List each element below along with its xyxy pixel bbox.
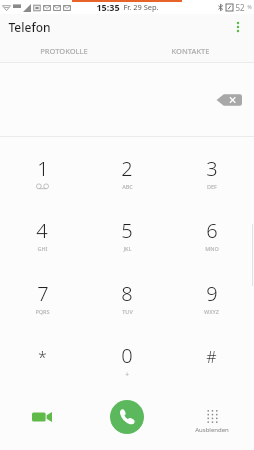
staticText: WXYZ: [204, 308, 219, 315]
staticText: GHI: [37, 245, 48, 252]
button[interactable]: More options: [228, 17, 248, 37]
button[interactable]: 6: [169, 203, 254, 266]
staticText: Fr. 29 Sep.: [123, 2, 159, 12]
staticText: 9: [206, 280, 218, 307]
staticText: 7: [37, 280, 49, 307]
button[interactable]: 5: [84, 203, 169, 266]
staticText: 1: [37, 155, 49, 182]
staticText: +: [125, 370, 129, 379]
staticText: 3: [206, 155, 218, 182]
staticText: Telefon: [8, 19, 51, 35]
button[interactable]: 1: [0, 141, 84, 203]
button[interactable]: 0: [84, 329, 169, 392]
button[interactable]: Video call: [0, 392, 84, 450]
button[interactable]: 3: [169, 141, 254, 203]
button[interactable]: Backspace: [216, 92, 242, 108]
staticText: 2: [121, 155, 133, 182]
staticText: JKL: [123, 245, 132, 252]
staticText: #: [206, 346, 217, 368]
staticText: 6: [206, 217, 218, 244]
staticText: *: [38, 346, 47, 368]
staticText: 52: [235, 2, 245, 13]
staticText: DEF: [207, 183, 217, 190]
staticText: 8: [121, 280, 133, 307]
button[interactable]: PROTOKOLLE: [0, 40, 127, 62]
staticText: KONTAKTE: [171, 46, 210, 56]
button[interactable]: #: [169, 329, 254, 392]
button[interactable]: 2: [84, 141, 169, 203]
button[interactable]: *: [0, 329, 84, 392]
button[interactable]: Ausblenden: [169, 392, 254, 450]
staticText: 0: [121, 342, 133, 369]
staticText: TUV: [122, 308, 133, 315]
staticText: ABC: [122, 183, 133, 190]
staticText: MNO: [205, 245, 219, 252]
button[interactable]: 8: [84, 266, 169, 329]
button[interactable]: 9: [169, 266, 254, 329]
button[interactable]: KONTAKTE: [127, 40, 254, 62]
staticText: 15:35: [96, 1, 120, 13]
staticText: 4: [36, 217, 48, 244]
staticText: PQRS: [35, 308, 50, 315]
button[interactable]: Call: [84, 392, 169, 450]
staticText: Ausblenden: [195, 426, 229, 434]
staticText: %: [247, 4, 252, 11]
button[interactable]: 4: [0, 203, 84, 266]
staticText: PROTOKOLLE: [40, 46, 88, 56]
staticText: 5: [121, 217, 133, 244]
button[interactable]: 7: [0, 266, 84, 329]
